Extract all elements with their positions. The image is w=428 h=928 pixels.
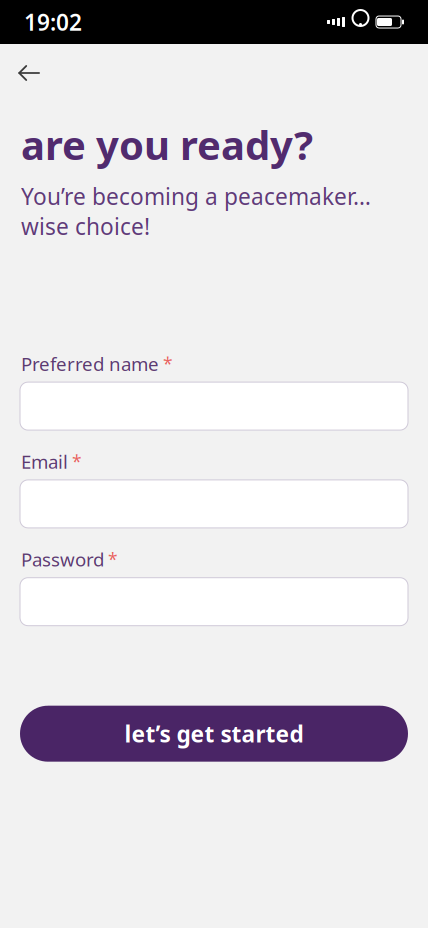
staticText: * — [163, 352, 173, 375]
button[interactable]: let’s get started — [20, 706, 408, 762]
staticText: 19:02 — [24, 7, 82, 37]
staticText: You’re becoming a peacemaker… wise choic… — [21, 181, 371, 241]
staticText: Email — [21, 449, 68, 474]
button[interactable]: Back — [7, 51, 51, 95]
staticText: let’s get started — [124, 719, 303, 749]
staticText: are you ready? — [21, 118, 313, 171]
staticText: Preferred name — [21, 351, 159, 376]
staticText: * — [108, 548, 118, 571]
staticText: Password — [21, 547, 104, 572]
staticText: * — [72, 450, 82, 473]
